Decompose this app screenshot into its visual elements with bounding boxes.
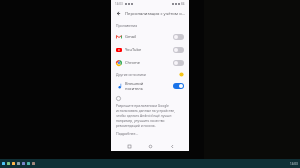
- button[interactable]: [17, 162, 20, 165]
- button[interactable]: [7, 162, 10, 165]
- button[interactable]: [22, 162, 25, 165]
- button[interactable]: Внешний: [116, 78, 184, 93]
- staticText: Chrome: [125, 60, 140, 65]
- button[interactable]: Off: [173, 60, 184, 66]
- button[interactable]: [32, 162, 35, 165]
- button[interactable]: Back: [114, 9, 123, 18]
- button[interactable]: On: [173, 83, 184, 89]
- staticText: Другие источники: [116, 72, 146, 77]
- staticText: 14:03: [290, 162, 298, 166]
- button[interactable]: [12, 162, 15, 165]
- staticText: YouTube: [125, 47, 142, 52]
- staticText: 14:03: [115, 2, 123, 6]
- button[interactable]: Off: [173, 47, 184, 53]
- staticText: носитель: [125, 86, 143, 91]
- staticText: 84: [181, 2, 185, 6]
- staticText: Подробнее…: [116, 131, 139, 136]
- button[interactable]: Recents: [125, 142, 133, 150]
- staticText: Разрешите приложениям Google использоват…: [116, 103, 184, 128]
- staticText: Внешний: [125, 81, 144, 86]
- button[interactable]: Off: [173, 34, 184, 40]
- button[interactable]: Подробнее…: [116, 131, 139, 136]
- button[interactable]: [27, 162, 30, 165]
- button[interactable]: Back: [168, 142, 176, 150]
- button[interactable]: Chrome: [116, 56, 184, 69]
- staticText: Персонализация с учётом обн…: [125, 11, 186, 17]
- button[interactable]: Gmail: [116, 30, 184, 43]
- button[interactable]: YouTube: [116, 43, 184, 56]
- staticText: Приложения: [116, 23, 138, 28]
- button[interactable]: [2, 162, 5, 165]
- button[interactable]: Home: [146, 142, 154, 150]
- staticText: Gmail: [125, 34, 136, 39]
